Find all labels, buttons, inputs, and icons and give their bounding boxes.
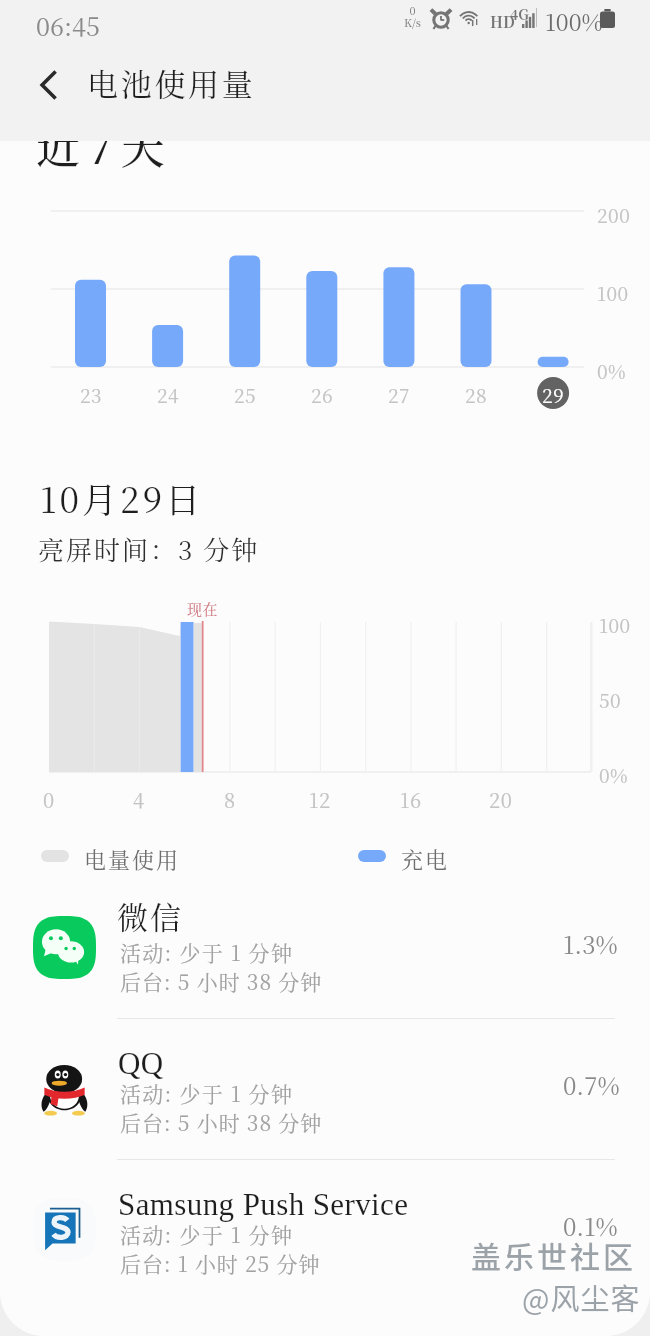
staticText: 100: [597, 279, 629, 306]
staticText: 24: [157, 381, 180, 408]
staticText: 微信: [117, 893, 183, 938]
staticText: 06:45: [36, 7, 100, 43]
staticText: 0 K/s: [404, 2, 421, 30]
staticText: 29: [542, 381, 565, 408]
button[interactable]: Samsung Push Service: [0, 1159, 650, 1300]
staticText: @风尘客: [522, 1276, 641, 1318]
staticText: 电池使用量: [87, 60, 256, 105]
staticText: HD: [490, 11, 515, 33]
staticText: 近7天: [36, 113, 173, 176]
staticText: 电量使用: [84, 843, 181, 875]
staticText: QQ: [118, 1046, 164, 1080]
staticText: 活动: 少于 1 分钟: [120, 1078, 294, 1108]
staticText: 后台: 5 小时 38 分钟: [120, 966, 323, 996]
staticText: 20: [489, 785, 513, 814]
staticText: 12: [309, 785, 331, 814]
staticText: 0: [43, 785, 55, 814]
staticText: 活动: 少于 1 分钟: [120, 937, 294, 967]
staticText: 盖乐世社区: [471, 1233, 636, 1276]
staticText: Samsung Push Service: [118, 1187, 409, 1221]
staticText: 4G: [510, 4, 529, 24]
button[interactable]: QQ: [0, 1018, 650, 1159]
staticText: 100%: [545, 5, 603, 38]
staticText: 后台: 1 小时 25 分钟: [120, 1248, 321, 1278]
staticText: 100: [599, 611, 631, 638]
staticText: 23: [80, 381, 103, 408]
staticText: 0.7%: [563, 1067, 620, 1101]
staticText: 4: [133, 785, 145, 814]
button[interactable]: Back: [25, 61, 73, 109]
staticText: 0.1%: [563, 1208, 618, 1242]
button[interactable]: 微信: [0, 877, 650, 1018]
staticText: 亮屏时间：3 分钟: [38, 530, 260, 567]
staticText: 25: [234, 381, 257, 408]
staticText: 28: [465, 381, 488, 408]
staticText: 50: [599, 686, 622, 713]
staticText: 10月29日: [40, 473, 204, 523]
staticText: 8: [224, 785, 236, 814]
staticText: 后台: 5 小时 38 分钟: [120, 1107, 323, 1137]
staticText: 16: [400, 785, 422, 814]
staticText: 现在: [187, 598, 219, 620]
staticText: 27: [388, 381, 411, 408]
staticText: 26: [311, 381, 334, 408]
staticText: 充电: [401, 843, 450, 875]
staticText: 0%: [597, 357, 627, 384]
staticText: 活动: 少于 1 分钟: [120, 1219, 294, 1249]
staticText: 200: [597, 201, 631, 228]
staticText: 0%: [599, 761, 629, 788]
staticText: 1.3%: [563, 926, 618, 960]
